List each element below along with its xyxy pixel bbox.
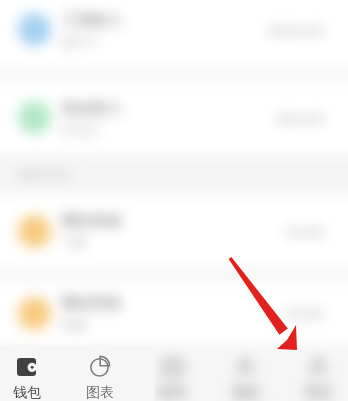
button[interactable]: 钱包 — [0, 345, 63, 401]
staticText: 工资收入 — [62, 11, 122, 30]
button[interactable]: 更多 — [282, 345, 348, 401]
staticText: 账单 — [159, 384, 187, 401]
staticText: 图表 — [86, 384, 114, 401]
button[interactable]: 奖金收入 — [0, 81, 348, 154]
staticText: 餐饮美食 — [62, 212, 122, 231]
button[interactable]: 图表 — [63, 345, 136, 401]
button[interactable]: 我的 — [209, 345, 282, 401]
staticText: 午餐 — [62, 235, 86, 250]
staticText: 钱包 — [13, 384, 41, 401]
staticText: 晚餐 — [62, 317, 86, 332]
staticText: 5000.00 — [268, 20, 324, 40]
button[interactable]: 账单 — [136, 345, 209, 401]
button[interactable]: 餐饮美食 — [0, 194, 348, 268]
button[interactable]: 图表 — [63, 345, 136, 401]
staticText: 图表 — [86, 384, 114, 401]
staticText: 我的 — [232, 384, 260, 401]
button[interactable]: 工资收入 — [0, 0, 348, 67]
button[interactable]: 餐饮美食 — [0, 281, 348, 345]
button[interactable]: 钱包 — [0, 345, 63, 401]
staticText: 餐饮美食 — [62, 294, 122, 313]
staticText: 钱包 — [13, 384, 41, 401]
staticText: 奖金收入 — [62, 99, 122, 118]
staticText: 800.00 — [277, 108, 324, 128]
staticText: 更多 — [305, 384, 333, 401]
